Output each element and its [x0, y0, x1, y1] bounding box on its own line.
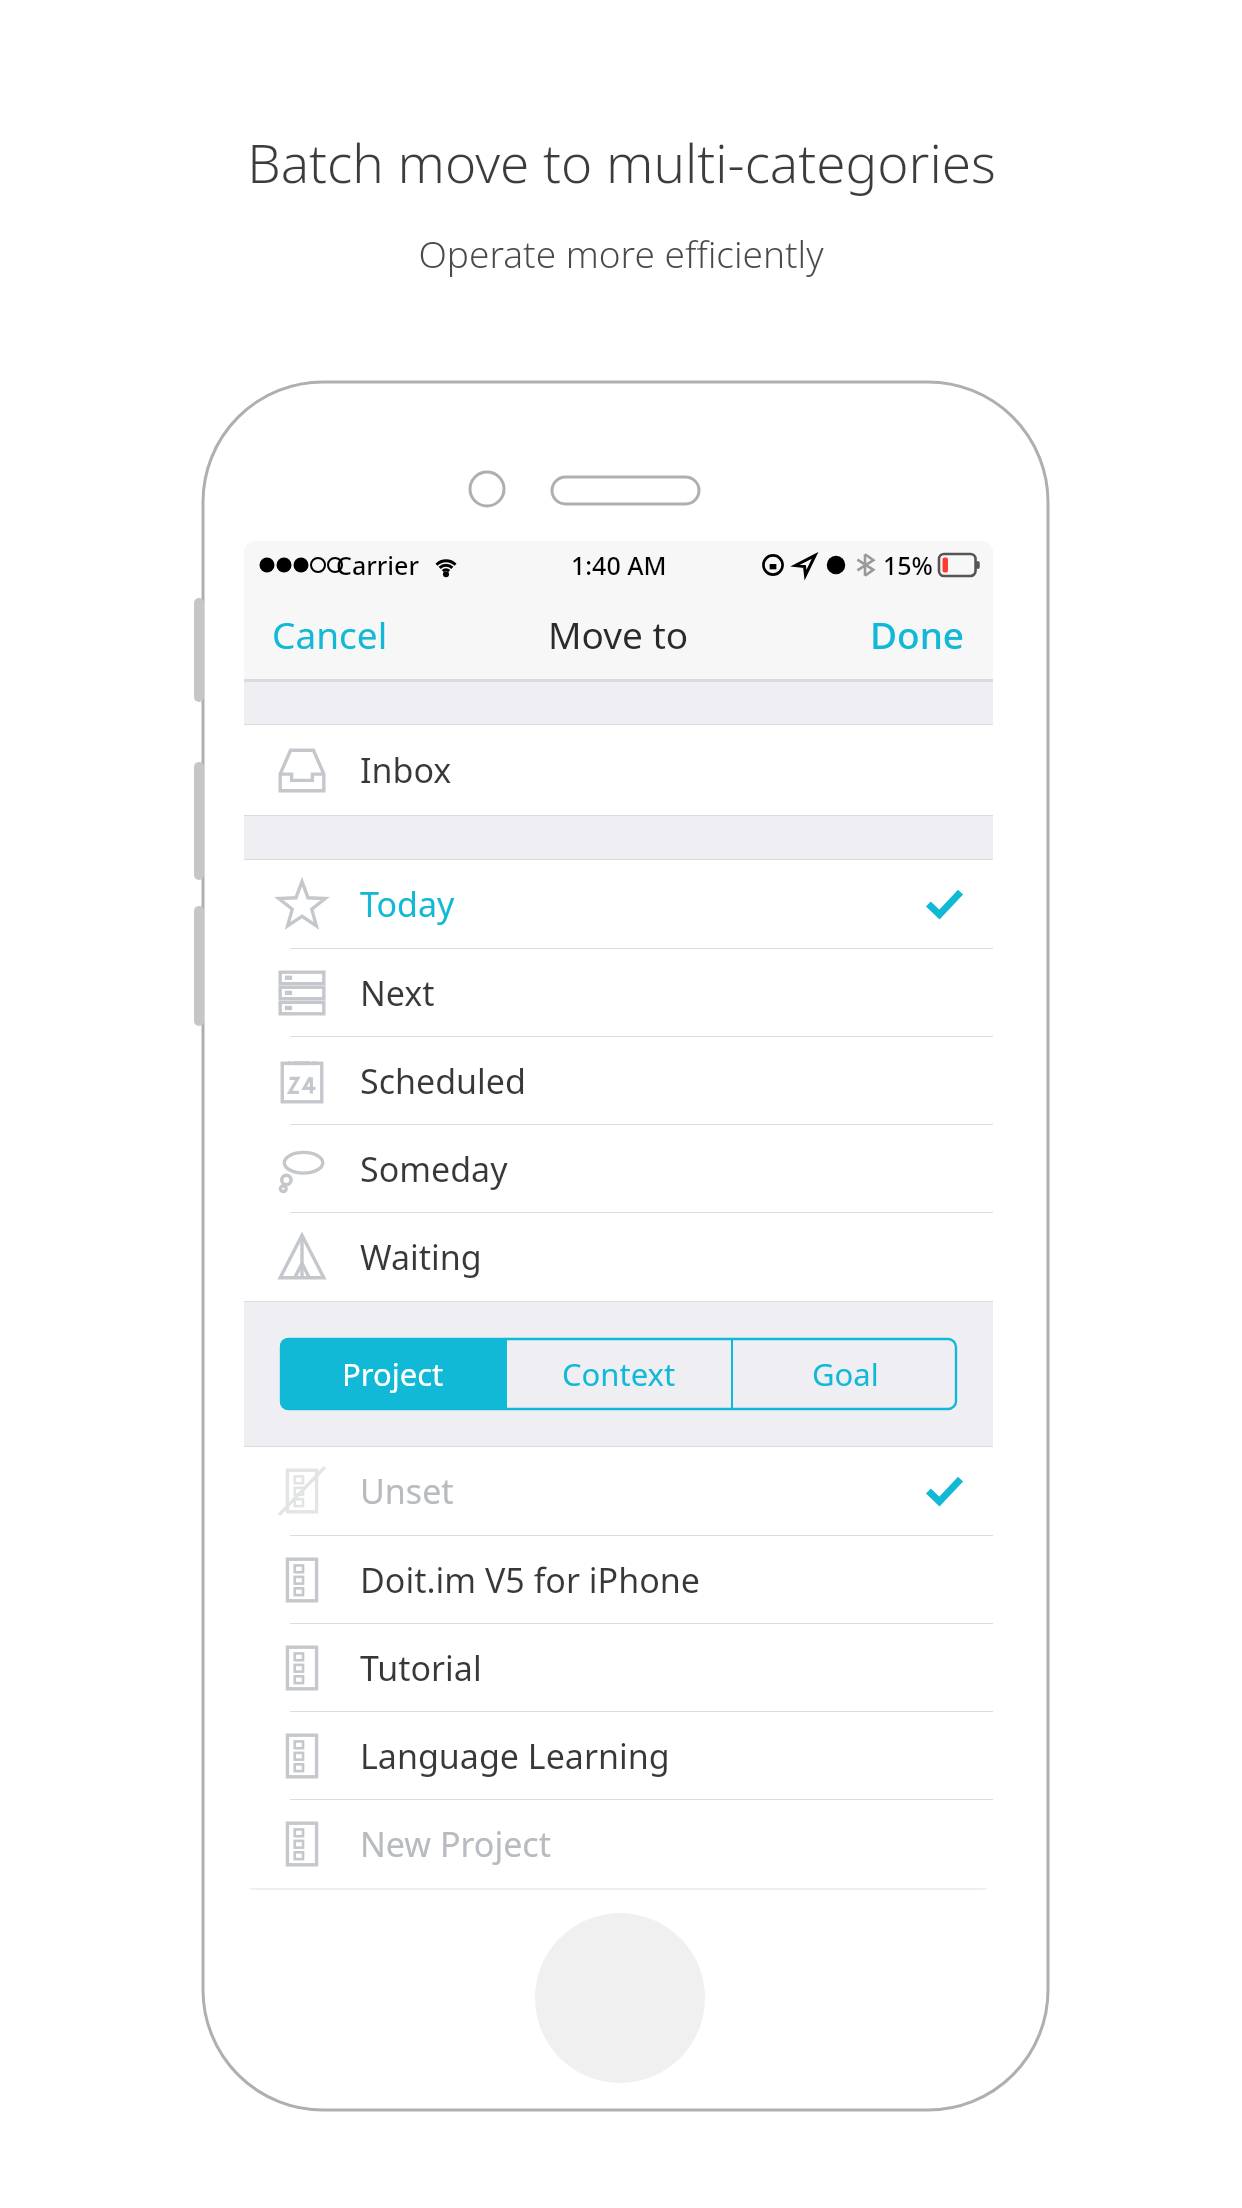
- button[interactable]: Context: [507, 1338, 731, 1410]
- button[interactable]: Done: [842, 595, 993, 673]
- staticText: Scheduled: [360, 1058, 526, 1104]
- button[interactable]: Tutorial: [244, 1624, 993, 1711]
- staticText: Language Learning: [360, 1733, 670, 1779]
- button[interactable]: Cancel: [244, 595, 416, 673]
- staticText: Waiting: [360, 1234, 482, 1280]
- button[interactable]: Someday: [244, 1125, 993, 1212]
- button[interactable]: Today: [244, 860, 993, 948]
- staticText: New Project: [360, 1821, 551, 1867]
- button[interactable]: Next: [244, 949, 993, 1036]
- staticText: 1:40 AM: [571, 548, 667, 582]
- staticText: Operate more efficiently: [418, 228, 824, 278]
- button[interactable]: Scheduled: [244, 1037, 993, 1124]
- button[interactable]: Unset: [244, 1447, 993, 1535]
- button[interactable]: Waiting: [244, 1213, 993, 1301]
- button[interactable]: Inbox: [244, 725, 993, 815]
- staticText: Move to: [548, 609, 689, 659]
- staticText: Tutorial: [360, 1645, 482, 1691]
- staticText: 15%: [883, 548, 933, 582]
- staticText: Goal: [812, 1353, 879, 1395]
- staticText: Carrier: [336, 548, 420, 582]
- staticText: Batch move to multi-categories: [247, 126, 996, 198]
- staticText: Project: [342, 1353, 444, 1395]
- staticText: Today: [360, 881, 455, 927]
- staticText: Done: [870, 609, 965, 659]
- staticText: Context: [562, 1353, 676, 1395]
- staticText: Unset: [360, 1468, 454, 1514]
- staticText: Inbox: [360, 747, 452, 793]
- staticText: Doit.im V5 for iPhone: [360, 1557, 700, 1603]
- staticText: Cancel: [272, 609, 388, 659]
- button[interactable]: Language Learning: [244, 1712, 993, 1799]
- staticText: Next: [360, 970, 435, 1016]
- button[interactable]: New Project: [244, 1800, 993, 1888]
- button[interactable]: Goal: [733, 1338, 957, 1410]
- staticText: Someday: [360, 1146, 508, 1192]
- button[interactable]: Doit.im V5 for iPhone: [244, 1536, 993, 1623]
- button[interactable]: Project: [280, 1338, 505, 1410]
